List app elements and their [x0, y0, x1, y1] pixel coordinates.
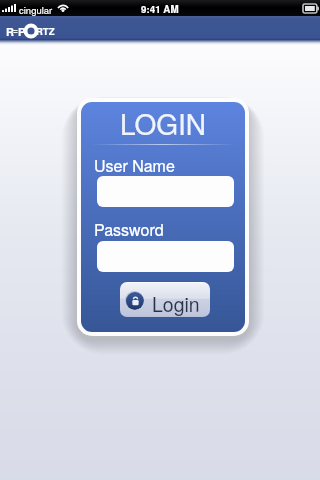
staticText: LOGIN	[120, 103, 207, 143]
staticText: cingular	[19, 3, 53, 17]
staticText: Password	[94, 218, 164, 241]
button[interactable]: Reportz	[6, 24, 58, 38]
staticText: R	[6, 24, 14, 38]
staticText: =	[13, 24, 18, 36]
button[interactable]	[97, 176, 234, 207]
staticText: RTZ	[36, 24, 55, 38]
staticText: 9:41 AM	[141, 2, 179, 16]
button[interactable]	[97, 241, 234, 272]
button[interactable]: Login	[120, 282, 210, 317]
staticText: P	[18, 24, 26, 38]
staticText: Login	[152, 290, 200, 317]
staticText: User Name	[94, 154, 175, 177]
